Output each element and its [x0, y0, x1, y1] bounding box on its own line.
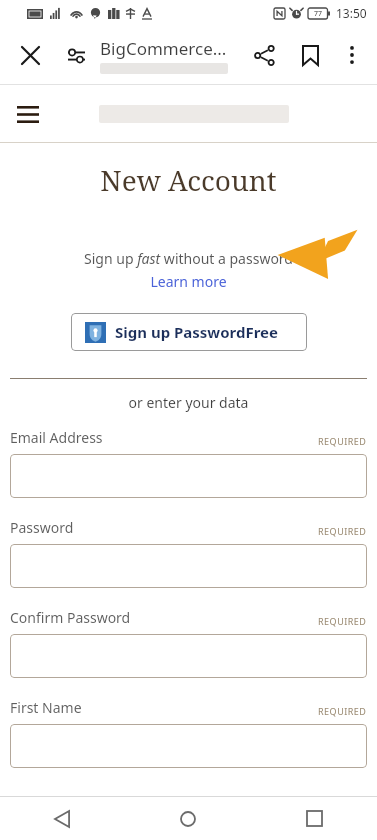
staticText: REQUIRED [318, 615, 367, 627]
button[interactable]: Share [243, 34, 285, 76]
button[interactable] [10, 634, 367, 678]
staticText: 13:50 [336, 5, 367, 21]
button[interactable]: Learn more [150, 272, 227, 291]
staticText: REQUIRED [318, 525, 367, 537]
button[interactable] [10, 724, 367, 768]
staticText: 77 [314, 9, 323, 19]
button[interactable]: Menu [6, 92, 50, 136]
staticText: Email Address [10, 428, 103, 447]
staticText: New Account [0, 161, 377, 199]
staticText: Sign up fast without a password [0, 249, 377, 268]
staticText: Confirm Password [10, 608, 131, 627]
button[interactable]: Close [8, 33, 52, 77]
button[interactable] [10, 544, 367, 588]
staticText: Password [10, 518, 74, 537]
button[interactable]: Site settings [55, 34, 97, 76]
button[interactable] [10, 454, 367, 498]
staticText: REQUIRED [318, 705, 367, 717]
staticText: First Name [10, 698, 82, 717]
button[interactable]: Recent apps [251, 797, 377, 840]
staticText: BigCommerce... [100, 37, 227, 60]
button[interactable]: Bookmark [289, 34, 331, 76]
button[interactable]: More options [331, 34, 373, 76]
staticText: Learn more [150, 272, 227, 291]
staticText: REQUIRED [318, 435, 367, 447]
button[interactable]: Sign up PasswordFree [71, 313, 307, 351]
staticText: or enter your data [0, 393, 377, 412]
button[interactable]: Home [125, 797, 251, 840]
button[interactable]: Back [0, 797, 125, 840]
staticText: Sign up PasswordFree [115, 322, 279, 342]
